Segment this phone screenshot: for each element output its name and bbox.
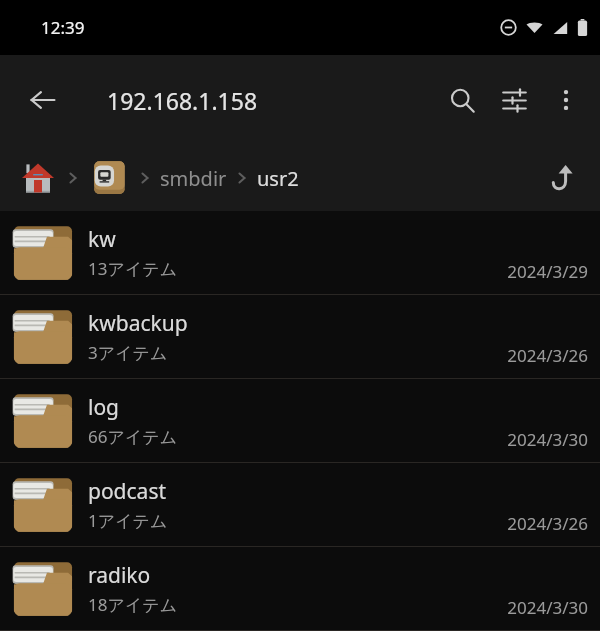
staticText: 2024/3/30 xyxy=(507,596,588,619)
staticText: kw xyxy=(88,225,116,254)
staticText: 1アイテム xyxy=(88,509,168,532)
button[interactable]: smbdir xyxy=(158,165,229,192)
staticText: kwbackup xyxy=(88,309,188,338)
staticText: podcast xyxy=(88,477,167,506)
staticText: 192.168.1.158 xyxy=(107,85,258,116)
button[interactable]: kwbackup xyxy=(0,295,600,378)
button[interactable]: log xyxy=(0,379,600,462)
button[interactable]: More options xyxy=(540,74,592,126)
button[interactable]: kw xyxy=(0,211,600,294)
staticText: smbdir xyxy=(160,165,227,192)
staticText: 66アイテム xyxy=(88,425,178,448)
staticText: log xyxy=(88,393,120,422)
staticText: 13アイテム xyxy=(88,257,178,280)
staticText: 12:39 xyxy=(41,16,85,39)
button[interactable]: Search xyxy=(436,74,488,126)
staticText: 18アイテム xyxy=(88,593,178,616)
staticText: usr2 xyxy=(257,165,299,192)
staticText: 2024/3/29 xyxy=(507,260,588,283)
button[interactable]: usr2 xyxy=(255,165,301,192)
button[interactable]: Home xyxy=(16,156,60,200)
staticText: 2024/3/30 xyxy=(507,428,588,451)
button[interactable]: Back xyxy=(19,76,67,124)
button[interactable]: podcast xyxy=(0,463,600,546)
button[interactable]: Go up xyxy=(538,156,582,200)
button[interactable]: radiko xyxy=(0,547,600,630)
button[interactable]: Network folder xyxy=(86,155,132,201)
staticText: radiko xyxy=(88,561,151,590)
staticText: 3アイテム xyxy=(88,341,168,364)
button[interactable]: Filter settings xyxy=(488,74,540,126)
staticText: 2024/3/26 xyxy=(507,344,588,367)
staticText: 2024/3/26 xyxy=(507,512,588,535)
